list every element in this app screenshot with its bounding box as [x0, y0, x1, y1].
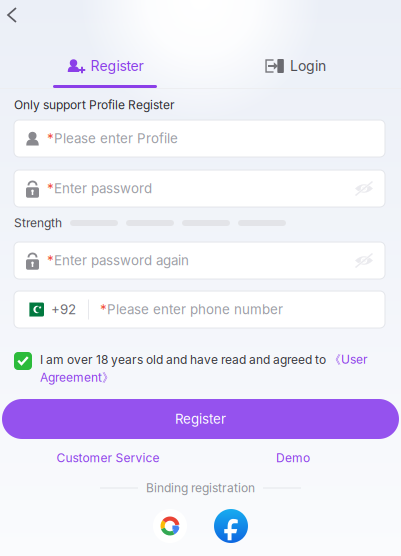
staticText: * [47, 252, 54, 268]
staticText: 《User [329, 352, 368, 367]
staticText: Customer Service [56, 451, 159, 465]
button[interactable]: Sign in with Google [152, 508, 187, 543]
staticText: Please enter phone number [107, 301, 283, 317]
button[interactable]: Login [211, 49, 381, 83]
staticText: Only support Profile Register [14, 98, 175, 112]
staticText: Demo [276, 451, 310, 465]
button[interactable]: Customer Service [15, 448, 200, 468]
staticText: I am over 18 years old and have read and… [40, 352, 329, 367]
staticText: Enter password [54, 180, 152, 196]
staticText: * [100, 301, 107, 317]
button[interactable]: Sign in with Facebook [213, 508, 248, 543]
button[interactable]: Back [0, 0, 30, 30]
staticText: +92 [51, 301, 76, 317]
staticText: Agreement》 [40, 370, 114, 385]
staticText: Enter password again [54, 252, 189, 268]
staticText: Binding registration [146, 481, 255, 495]
staticText: Strength [14, 216, 62, 230]
button[interactable]: I am over 18 years old and have read and… [14, 352, 385, 388]
staticText: Login [290, 57, 326, 74]
staticText: Register [175, 411, 226, 427]
button[interactable]: Register [20, 49, 190, 83]
button[interactable]: Register [2, 399, 399, 439]
button[interactable]: Demo [200, 448, 385, 468]
staticText: Please enter Profile [54, 130, 178, 146]
staticText: Register [90, 57, 143, 74]
staticText: * [47, 180, 54, 196]
staticText: * [47, 130, 54, 146]
